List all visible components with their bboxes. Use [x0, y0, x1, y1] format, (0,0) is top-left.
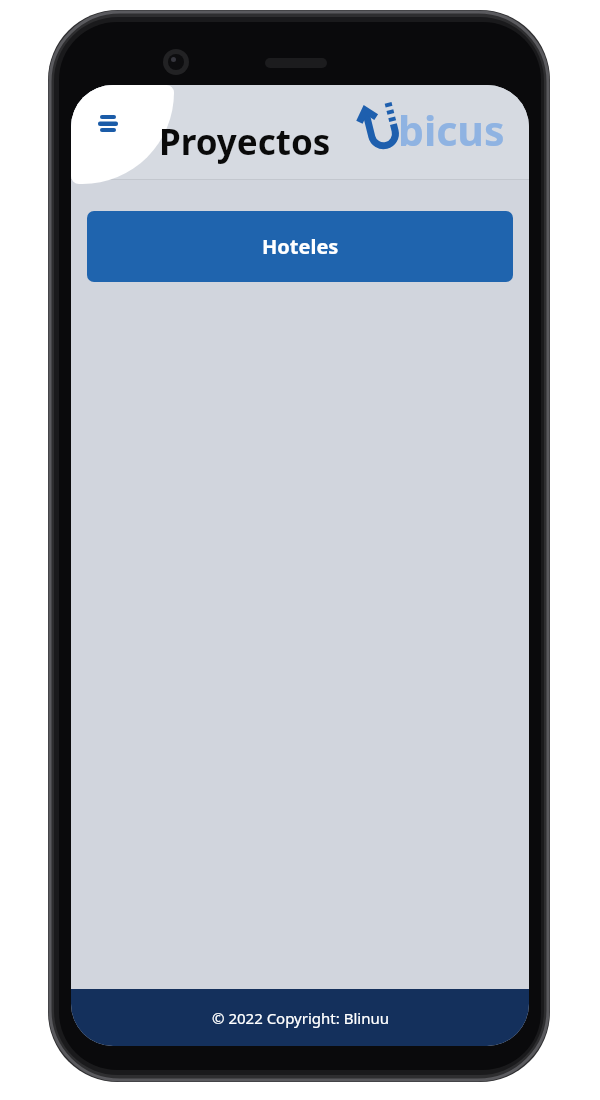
staticText: © 2022 Copyright: Blinuu	[212, 1008, 389, 1028]
button[interactable]: Hoteles	[87, 211, 513, 282]
staticText: Hoteles	[262, 233, 339, 260]
staticText: Proyectos	[159, 118, 331, 166]
staticText: bicus	[398, 102, 505, 158]
button[interactable]	[71, 85, 174, 184]
